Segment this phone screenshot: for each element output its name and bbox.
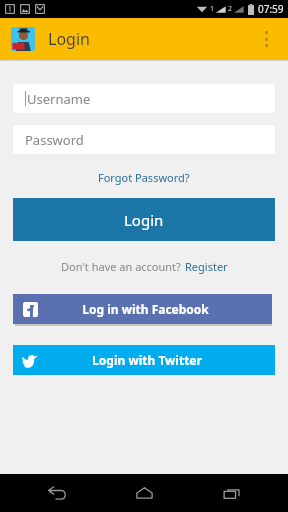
button[interactable]: More options [250, 18, 282, 60]
button[interactable]: Register [185, 259, 228, 274]
staticText: Username [27, 90, 91, 108]
staticText: Forgot Password? [98, 170, 190, 185]
button[interactable]: Password [13, 125, 275, 154]
button[interactable]: App logo [11, 27, 35, 51]
staticText: 1 [210, 4, 215, 14]
staticText: Login [48, 28, 90, 50]
button[interactable]: Login with Twitter [13, 345, 275, 375]
button[interactable]: Username [13, 84, 275, 113]
button[interactable]: Home [113, 474, 175, 512]
staticText: Password [25, 131, 84, 149]
button[interactable]: Back [26, 474, 88, 512]
button[interactable]: Login [13, 198, 275, 241]
staticText: Log in with Facebook [82, 301, 209, 317]
button[interactable]: Recent apps [201, 474, 263, 512]
button[interactable]: Log in with Facebook [13, 294, 272, 324]
staticText: 07:59 [258, 2, 284, 16]
staticText: Login with Twitter [92, 352, 202, 368]
staticText: Register [185, 259, 228, 274]
staticText: Login [124, 210, 164, 230]
button[interactable]: Forgot Password? [13, 168, 275, 186]
staticText: Don't have an account? [61, 259, 181, 274]
staticText: 2 [228, 4, 233, 14]
